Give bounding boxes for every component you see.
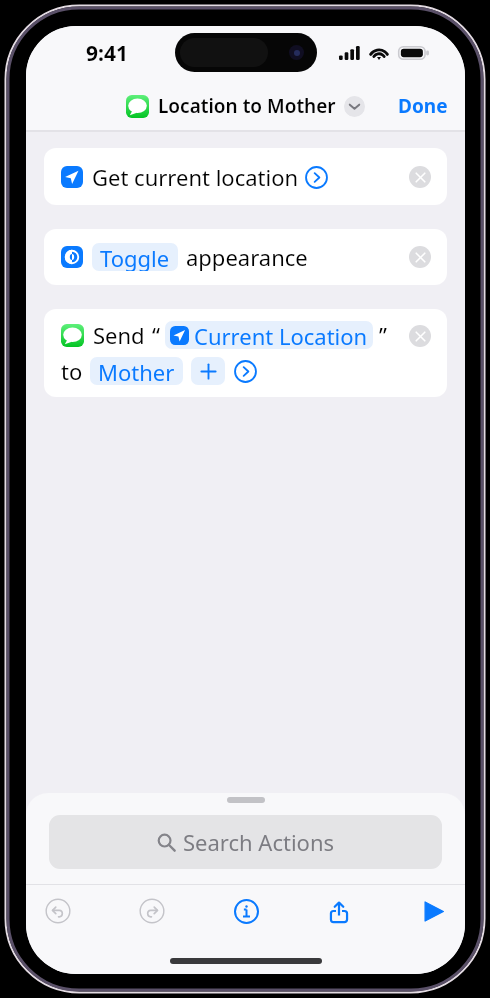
button[interactable]: Redo: [139, 898, 165, 924]
staticText: ”: [379, 320, 387, 350]
button[interactable]: Toggle: [44, 229, 447, 285]
button[interactable]: Undo: [45, 898, 71, 924]
button[interactable]: Get current location: [44, 148, 447, 205]
button[interactable]: Share: [326, 898, 352, 924]
staticText: “: [152, 320, 160, 350]
staticText: appearance: [186, 242, 308, 272]
button[interactable]: Location to Mother: [126, 93, 365, 119]
button[interactable]: Toggle: [92, 243, 178, 271]
button[interactable]: Search Actions: [49, 815, 442, 869]
staticText: to: [61, 356, 83, 386]
button[interactable]: Mother: [90, 357, 183, 385]
button[interactable]: Remove: [409, 325, 431, 347]
staticText: Toggle: [100, 243, 170, 271]
button[interactable]: Remove: [409, 166, 431, 188]
button[interactable]: Run: [420, 898, 446, 924]
staticText: Mother: [98, 357, 175, 385]
button[interactable]: Current Location: [165, 321, 373, 349]
staticText: 9:41: [86, 39, 128, 68]
staticText: Send: [93, 320, 145, 350]
staticText: Search Actions: [183, 827, 335, 857]
button[interactable]: Expand: [234, 360, 257, 383]
staticText: Location to Mother: [158, 93, 336, 119]
button[interactable]: Add: [191, 357, 225, 385]
button[interactable]: Done: [398, 93, 448, 119]
button[interactable]: Expand: [305, 166, 328, 189]
button[interactable]: Info: [233, 898, 259, 924]
staticText: Get current location: [92, 162, 299, 192]
button[interactable]: Send: [44, 309, 447, 397]
staticText: Current Location: [194, 321, 368, 349]
button[interactable]: Remove: [409, 246, 431, 268]
